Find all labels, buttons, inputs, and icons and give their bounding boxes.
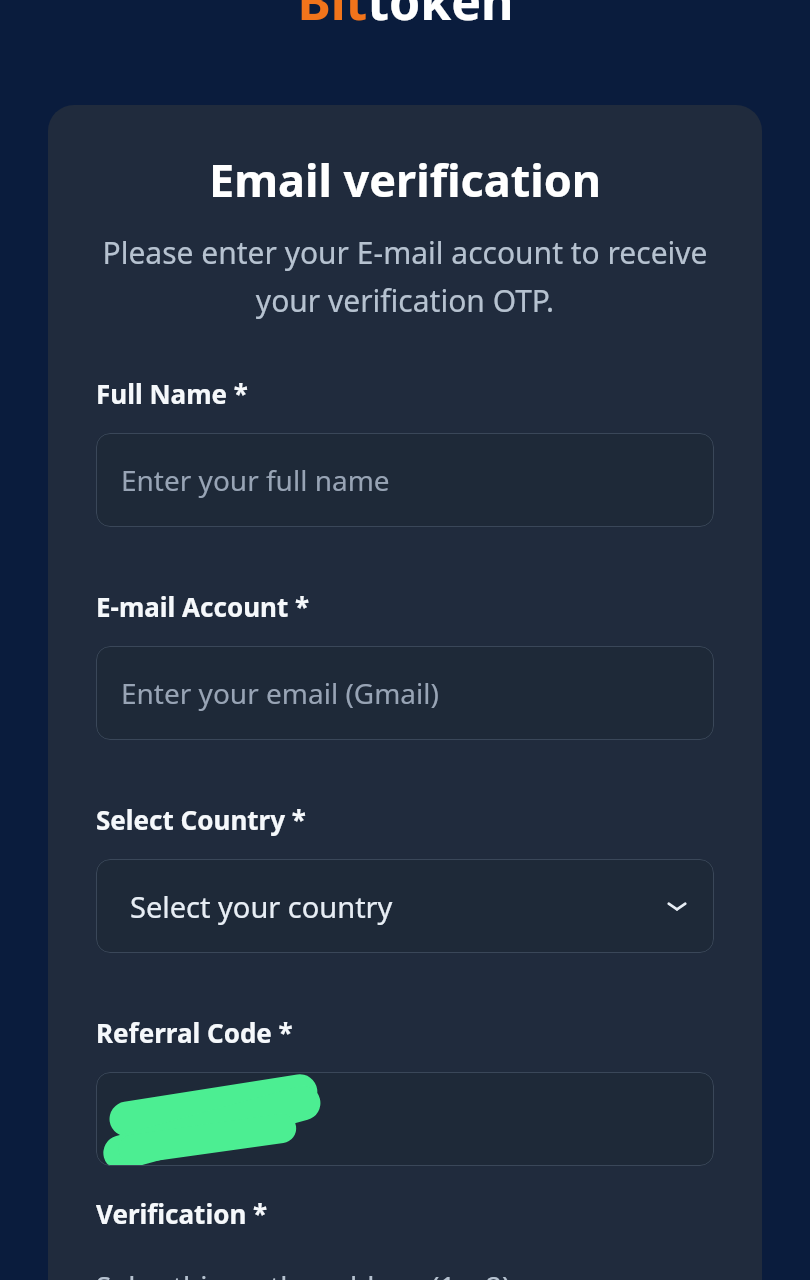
staticText: Select Country * — [96, 802, 714, 837]
staticText: Solve this math problem: (1 + 2) — [96, 1267, 511, 1280]
staticText: Enter your full name — [121, 461, 690, 499]
staticText: Select your country — [130, 887, 664, 926]
staticText: 51 — [128, 1100, 690, 1139]
button[interactable]: Select your country — [96, 859, 714, 953]
button[interactable]: 51 — [96, 1072, 714, 1166]
staticText: Referral Code * — [96, 1015, 714, 1050]
staticText: E-mail Account * — [96, 589, 714, 624]
button[interactable]: Enter your email (Gmail) — [96, 646, 714, 740]
staticText: Full Name * — [96, 376, 714, 411]
staticText: Please enter your E-mail account to rece… — [96, 232, 714, 320]
staticText: Bittoken — [297, 0, 514, 35]
staticText: Verification * — [96, 1196, 714, 1231]
staticText: Enter your email (Gmail) — [121, 674, 690, 712]
staticText: Email verification — [96, 149, 714, 210]
button[interactable]: Enter your full name — [96, 433, 714, 527]
